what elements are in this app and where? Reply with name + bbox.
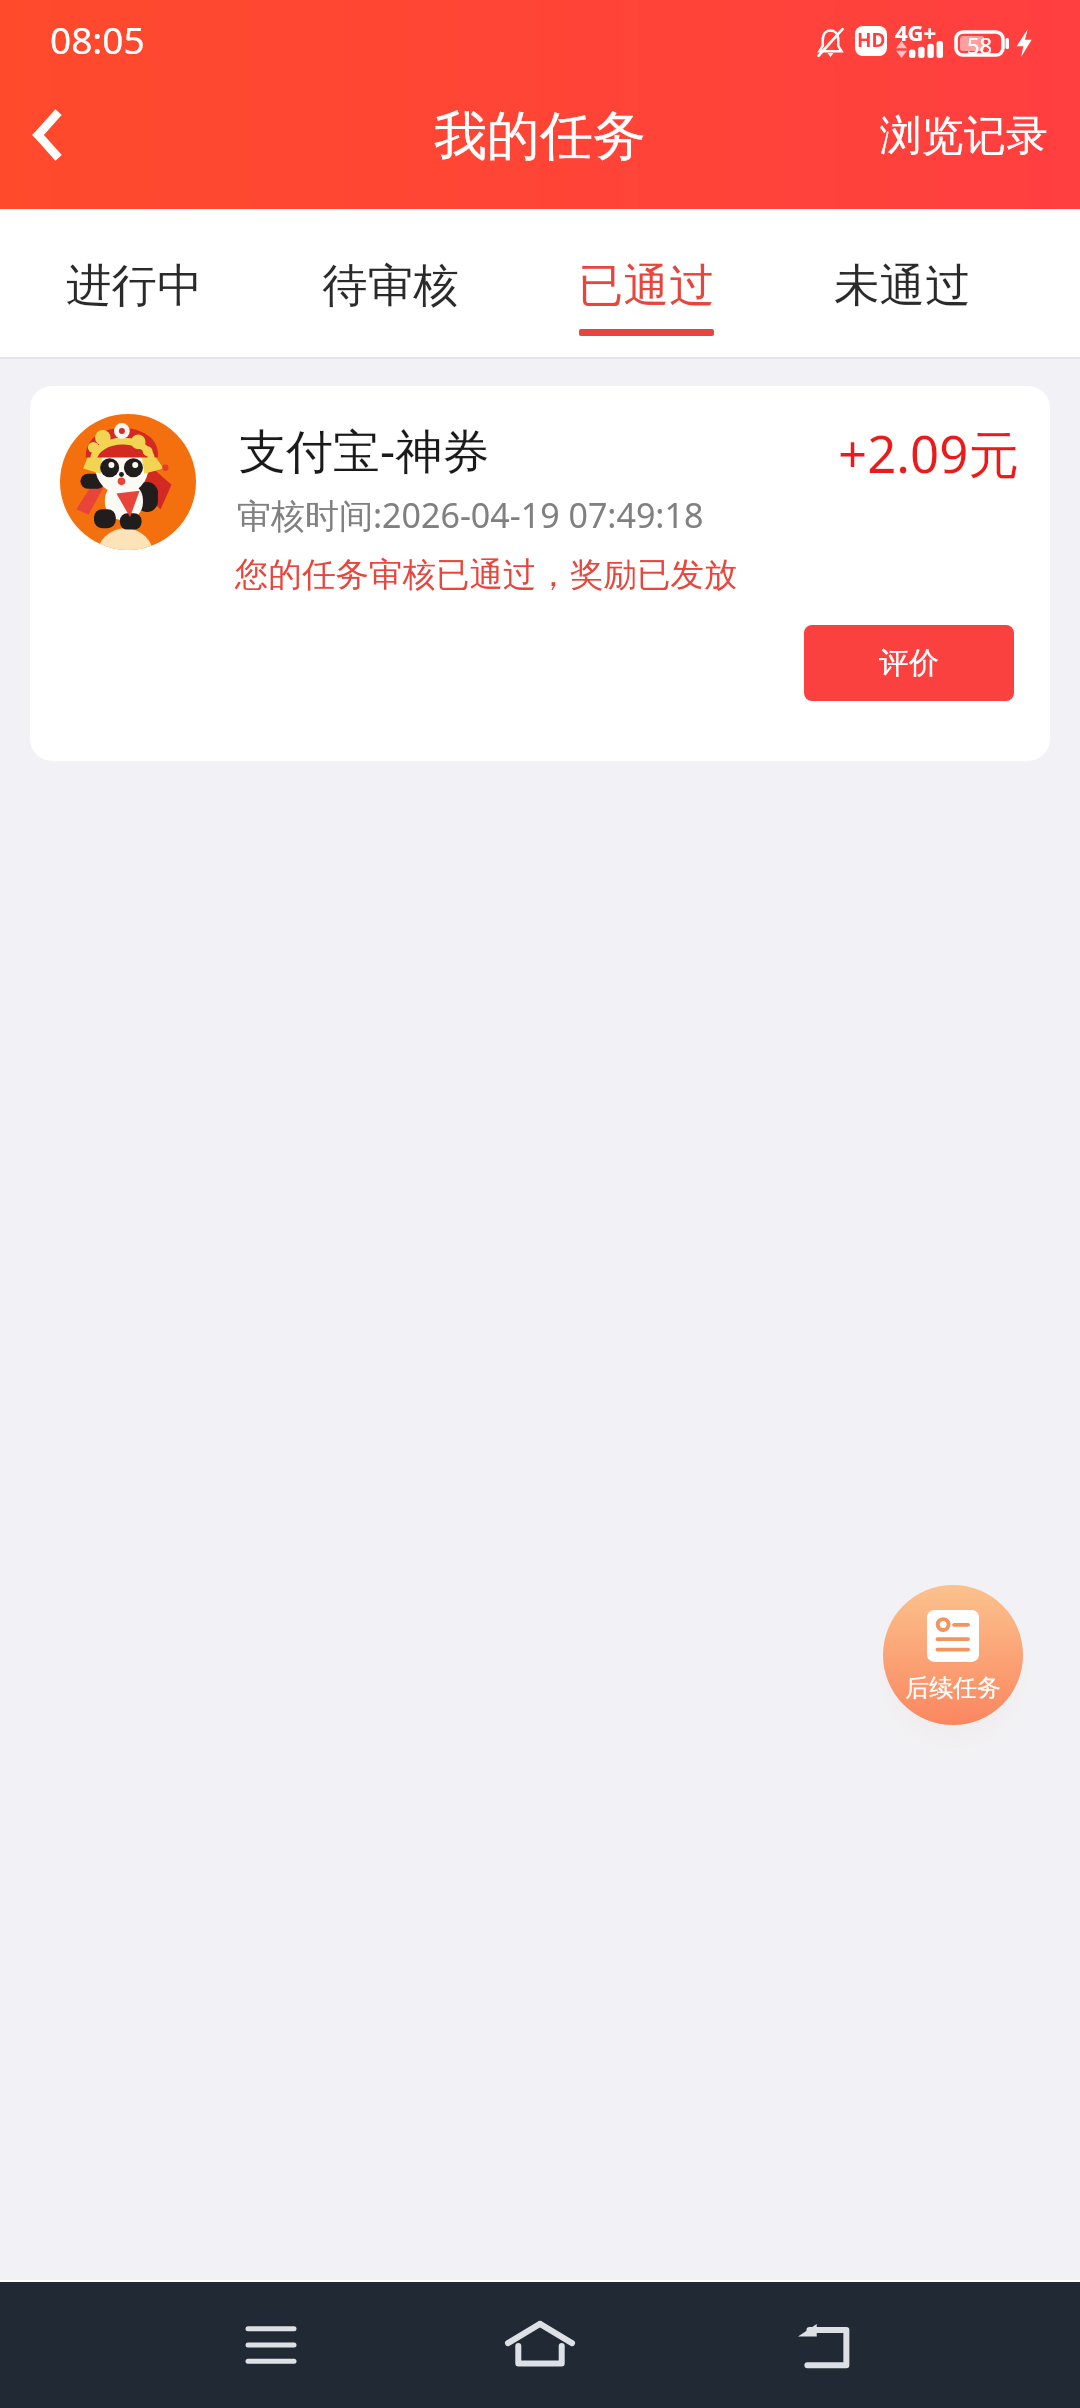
button[interactable]: 支付宝-神券 — [30, 386, 1050, 761]
staticText: 58 — [967, 30, 993, 57]
button[interactable]: Back — [5, 93, 89, 177]
staticText: HD — [857, 27, 886, 53]
button[interactable]: 评价 — [804, 625, 1014, 701]
button[interactable]: Back — [764, 2282, 884, 2408]
button[interactable]: 未通过 — [774, 209, 1030, 357]
button[interactable]: Home — [480, 2282, 600, 2408]
staticText: 支付宝-神券 — [239, 418, 490, 482]
staticText: 待审核 — [322, 257, 459, 314]
staticText: 已通过 — [578, 257, 715, 314]
staticText: 浏览记录 — [880, 110, 1048, 163]
staticText: 进行中 — [66, 257, 203, 314]
staticText: 审核时间:2026-04-19 07:49:18 — [237, 492, 704, 538]
staticText: 评价 — [879, 644, 939, 682]
button[interactable]: 已通过 — [518, 209, 774, 357]
button[interactable]: 进行中 — [6, 209, 262, 357]
staticText: +2.09元 — [838, 418, 1020, 488]
button[interactable]: 浏览记录 — [864, 90, 1064, 183]
staticText: 您的任务审核已通过，奖励已发放 — [235, 554, 738, 596]
staticText: 我的任务 — [434, 103, 646, 170]
staticText: 4G+ — [895, 17, 937, 47]
button[interactable]: 待审核 — [262, 209, 518, 357]
button[interactable]: Recent apps — [211, 2282, 331, 2408]
button[interactable]: 后续任务 — [883, 1585, 1023, 1725]
staticText: 08:05 — [50, 14, 145, 64]
staticText: 未通过 — [834, 257, 971, 314]
staticText: 后续任务 — [905, 1673, 1001, 1703]
